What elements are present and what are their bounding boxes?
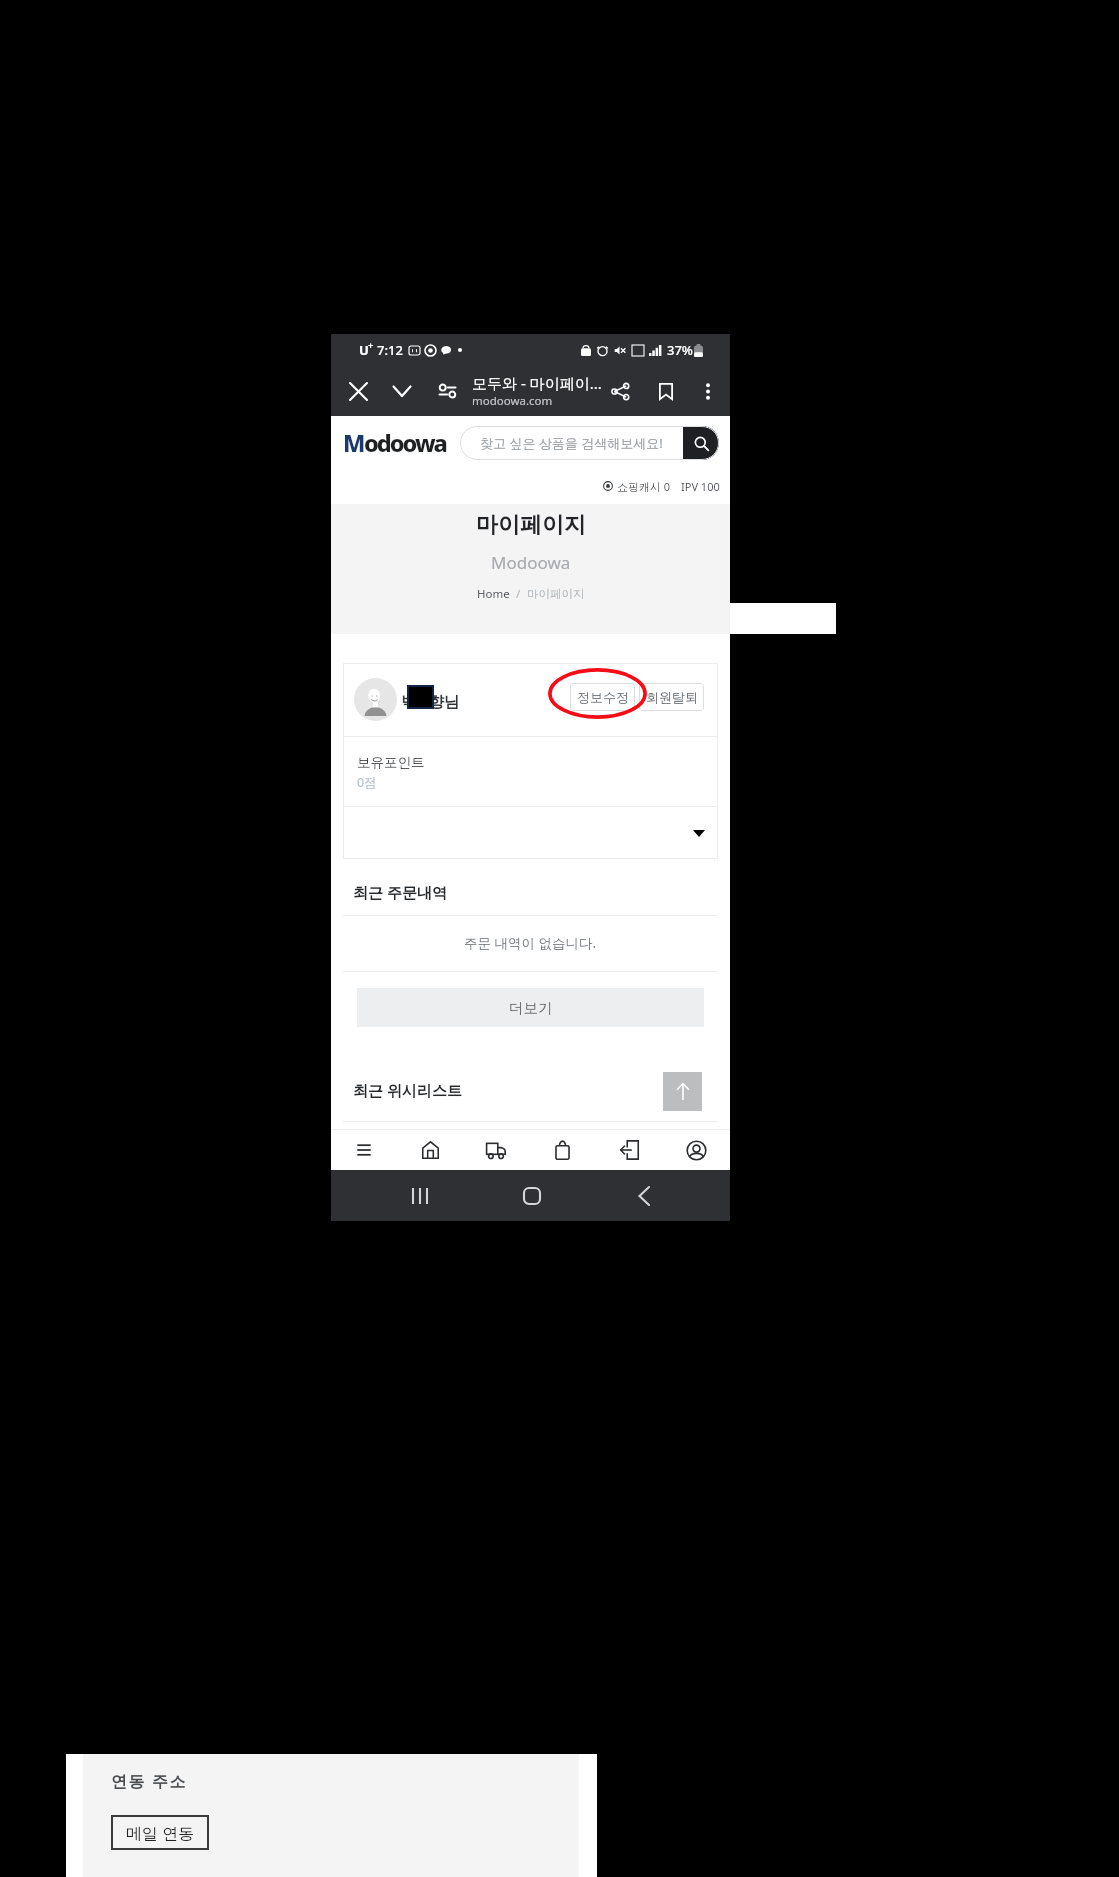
staticText: 쇼핑캐시 0 — [617, 479, 671, 494]
staticText: odoowa — [364, 427, 446, 459]
staticText: 연동 주소 — [111, 1770, 188, 1792]
button[interactable]: Home — [397, 1130, 463, 1170]
button[interactable]: 정보수정 — [570, 683, 635, 711]
button[interactable]: Share — [602, 371, 638, 411]
button[interactable]: Minimize — [385, 374, 419, 408]
staticText: Home — [477, 586, 510, 602]
button[interactable]: Delivery — [463, 1130, 529, 1170]
staticText: 박 향님 — [401, 690, 460, 711]
staticText: 37% — [667, 341, 693, 359]
staticText: / — [510, 586, 527, 602]
staticText: 마이페이지 — [476, 511, 586, 539]
button[interactable]: More options — [690, 371, 726, 411]
staticText: 정보수정 — [577, 689, 629, 705]
staticText: 보유포인트 — [357, 754, 425, 771]
button[interactable]: Back — [626, 1170, 662, 1221]
staticText: 마이페이지 — [527, 587, 585, 601]
staticText: 더보기 — [509, 999, 553, 1017]
button[interactable]: Expand — [687, 821, 711, 845]
button[interactable]: Bookmark — [648, 371, 684, 411]
button[interactable]: Menu — [331, 1130, 397, 1170]
button[interactable]: 회원탈퇴 — [639, 683, 704, 711]
button[interactable]: Scroll to top — [663, 1072, 702, 1111]
staticText: 0점 — [357, 774, 377, 791]
button[interactable]: Home — [514, 1170, 550, 1221]
button[interactable]: M — [343, 427, 446, 459]
button[interactable]: Recents — [402, 1170, 438, 1221]
staticText: 메일 연동 — [126, 1822, 195, 1844]
button[interactable]: 메일 연동 — [111, 1815, 209, 1850]
staticText: 최근 위시리스트 — [353, 1080, 462, 1100]
staticText: + — [368, 339, 374, 351]
button[interactable]: Close — [341, 374, 375, 408]
staticText: 모두와 - 마이페이... — [472, 373, 602, 393]
button[interactable]: Search — [683, 426, 719, 460]
staticText: M — [343, 427, 364, 459]
staticText: U — [359, 341, 369, 359]
staticText: Modoowa — [491, 551, 571, 574]
button[interactable]: 더보기 — [357, 988, 704, 1027]
staticText: 주문 내역이 없습니다. — [464, 934, 597, 952]
staticText: modoowa.com — [472, 393, 553, 409]
staticText: 회원탈퇴 — [646, 689, 698, 705]
button[interactable]: Logout — [596, 1130, 663, 1170]
button[interactable]: 최근 주문내역 — [353, 872, 730, 912]
staticText: 최근 주문내역 — [353, 882, 447, 902]
button[interactable]: Page info — [430, 374, 464, 408]
staticText: 7:12 — [377, 341, 403, 359]
button[interactable]: 찾고 싶은 상품을 검색해보세요! — [460, 426, 719, 460]
staticText: IPV 100 — [681, 479, 720, 494]
staticText: 찾고 싶은 상품을 검색해보세요! — [480, 434, 663, 452]
button[interactable]: Shopping bag — [529, 1130, 596, 1170]
button[interactable]: Account — [663, 1130, 730, 1170]
